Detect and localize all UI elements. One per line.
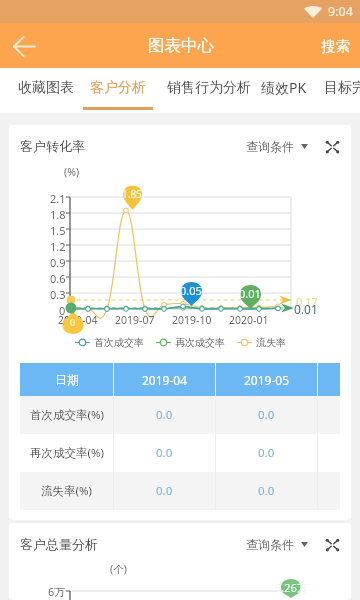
staticText: 1.85 (122, 187, 142, 201)
staticText: 0.6 (50, 271, 66, 286)
button[interactable]: 查询条件 (246, 136, 308, 157)
staticText: 1.2 (50, 239, 66, 254)
staticText: 0 (59, 303, 66, 318)
button[interactable]: 销售行为分析 (167, 68, 251, 113)
staticText: 2019-04 (142, 372, 188, 388)
staticText: 查询条件 (246, 139, 294, 154)
button[interactable]: 流失率 (237, 336, 286, 349)
staticText: 0.0 (156, 445, 173, 461)
staticText: 0.9 (50, 255, 66, 270)
button[interactable]: 搜索 (321, 37, 350, 55)
staticText: 图表中心 (148, 35, 214, 56)
staticText: 0.01 (239, 286, 261, 301)
staticText: 0.0 (258, 445, 275, 461)
staticText: 0.0 (258, 483, 275, 499)
staticText: 0 (70, 316, 76, 328)
button[interactable]: 查询条件 (246, 534, 308, 555)
staticText: 首次成交率(%) (30, 407, 104, 423)
staticText: 0.01 (294, 301, 318, 317)
staticText: 2019-07 (115, 313, 155, 327)
button[interactable]: Fullscreen (323, 536, 341, 554)
staticText: 0.0 (156, 483, 173, 499)
staticText: 客户总量分析 (20, 536, 98, 552)
staticText: 目标完 (324, 79, 360, 97)
staticText: 流失率 (256, 336, 286, 349)
staticText: 1.8 (50, 207, 66, 222)
staticText: 5.26万 (275, 580, 308, 595)
staticText: 搜索 (321, 37, 350, 55)
staticText: 2019-05 (244, 372, 290, 388)
button[interactable]: 客户分析 (83, 68, 153, 113)
staticText: 客户转化率 (20, 138, 85, 154)
staticText: 日期 (55, 372, 79, 387)
button[interactable]: 目标完 (324, 68, 360, 113)
button[interactable]: 再次成交率 (156, 336, 225, 349)
staticText: 1.5 (50, 223, 66, 238)
button[interactable]: 绩效PK (261, 68, 307, 113)
staticText: 2020-01 (229, 313, 269, 327)
staticText: 9:04 (328, 3, 353, 20)
staticText: 0.05 (180, 283, 202, 298)
staticText: 0.3 (50, 287, 66, 302)
staticText: 再次成交率(%) (30, 445, 104, 461)
staticText: 2019-10 (172, 313, 212, 327)
staticText: 0.0 (156, 407, 173, 423)
staticText: 再次成交率 (175, 336, 225, 349)
staticText: 0.17 (296, 294, 318, 309)
staticText: 2019-04 (58, 313, 98, 327)
staticText: (个) (110, 562, 127, 576)
staticText: 查询条件 (246, 537, 294, 552)
staticText: 首次成交率 (94, 336, 144, 349)
button[interactable]: Fullscreen (323, 138, 341, 156)
button[interactable]: Back (4, 27, 42, 65)
staticText: 流失率(%) (41, 483, 92, 499)
staticText: (%) (64, 165, 80, 179)
staticText: 客户分析 (90, 79, 146, 97)
staticText: 2.1 (50, 191, 66, 206)
staticText: 销售行为分析 (167, 79, 251, 97)
staticText: 6万 (48, 584, 66, 599)
staticText: 收藏图表 (18, 79, 74, 97)
button[interactable]: 首次成交率 (75, 336, 144, 349)
staticText: 绩效PK (261, 78, 307, 97)
button[interactable]: 收藏图表 (18, 68, 74, 113)
staticText: 0.0 (258, 407, 275, 423)
